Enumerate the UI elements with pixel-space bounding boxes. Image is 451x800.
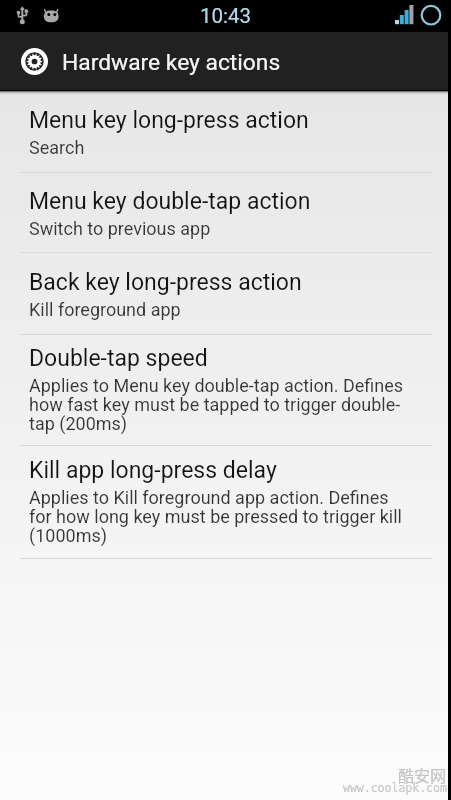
button[interactable]: Menu key long-press action	[0, 90, 451, 172]
button[interactable]: Kill app long-press delay	[0, 446, 451, 558]
button[interactable]: Menu key double-tap action	[0, 173, 451, 252]
staticText: Back key long-press action	[29, 269, 302, 296]
button[interactable]: Back key long-press action	[0, 253, 451, 334]
staticText: 酷安网	[398, 763, 447, 786]
staticText: Kill foreground app	[29, 299, 181, 320]
button[interactable]: Settings	[0, 32, 451, 90]
other: Settings	[21, 48, 48, 75]
staticText: Hardware key actions	[62, 49, 281, 76]
staticText: Applies to Menu key double-tap action. D…	[29, 375, 411, 435]
staticText: Switch to previous app	[29, 218, 211, 239]
staticText: Double-tap speed	[29, 345, 208, 372]
staticText: Menu key long-press action	[29, 107, 309, 134]
staticText: Search	[29, 137, 85, 158]
button[interactable]: Double-tap speed	[0, 335, 451, 445]
staticText: Applies to Kill foreground app action. D…	[29, 487, 411, 547]
staticText: www.coolapk.com	[343, 781, 447, 794]
staticText: Menu key double-tap action	[29, 188, 311, 215]
staticText: Kill app long-press delay	[29, 457, 277, 484]
staticText: 10:43	[200, 4, 252, 28]
